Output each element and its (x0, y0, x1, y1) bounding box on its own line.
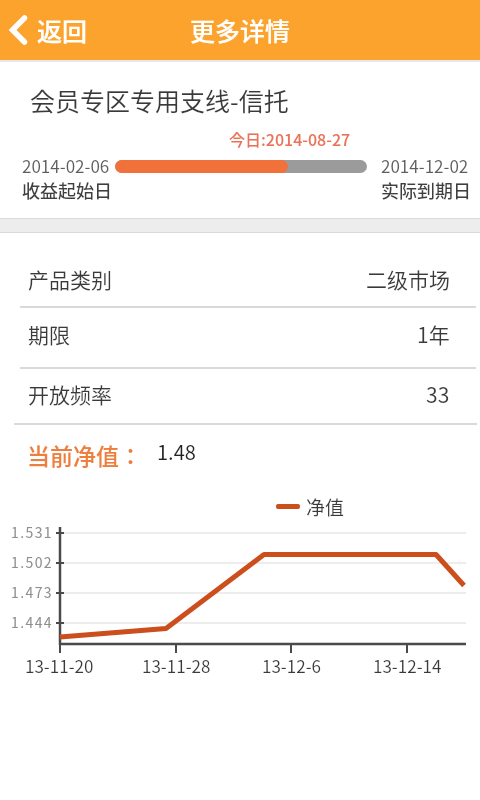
staticText: 更多详情 (190, 12, 291, 48)
staticText: 2014-12-02 (381, 153, 469, 178)
staticText: 13-11-28 (142, 653, 211, 678)
staticText: 期限 (28, 319, 70, 349)
staticText: 今日:2014-08-27 (229, 127, 351, 150)
staticText: 净值 (306, 493, 345, 521)
staticText: 产品类别 (28, 264, 112, 294)
staticText: 1.444 (0, 612, 53, 632)
staticText: 1.531 (0, 522, 53, 542)
button[interactable]: 开放频率 (28, 379, 450, 409)
staticText: 13-11-20 (25, 653, 94, 678)
staticText: 1.48 (157, 437, 196, 466)
button[interactable]: 期限 (28, 319, 450, 349)
staticText: 开放频率 (28, 379, 112, 409)
staticText: 13-12-6 (262, 653, 321, 678)
staticText: 收益起始日 (22, 177, 112, 203)
staticText: 1.473 (0, 582, 53, 602)
staticText: 当前净值： (27, 438, 142, 471)
staticText: 会员专区专用支线-信托 (30, 82, 289, 118)
button[interactable]: 产品类别 (28, 264, 450, 294)
staticText: 返回 (37, 12, 88, 48)
staticText: 1.502 (0, 552, 53, 572)
staticText: 33 (426, 379, 450, 409)
staticText: 实际到期日 (381, 177, 471, 203)
staticText: 13-12-14 (373, 653, 442, 678)
staticText: 1年 (417, 319, 450, 349)
button[interactable]: 返回 (0, 0, 100, 60)
staticText: 2014-02-06 (22, 153, 110, 178)
staticText: 二级市场 (366, 264, 450, 294)
